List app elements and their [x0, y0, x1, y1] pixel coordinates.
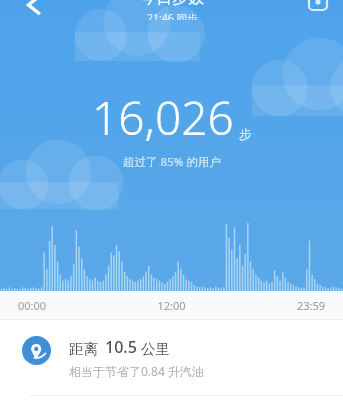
button[interactable]: Back: [14, 0, 54, 19]
staticText: 12:00: [96, 298, 247, 313]
staticText: 10.5: [105, 336, 137, 358]
staticText: 距离: [69, 340, 98, 358]
staticText: 步: [239, 126, 252, 142]
staticText: 23:59: [247, 298, 325, 313]
staticText: 21:46 同步: [147, 11, 198, 20]
staticText: 相当于节省了0.84 升汽油: [69, 363, 204, 379]
staticText: 16,026: [92, 86, 234, 149]
staticText: 今日步数: [140, 0, 204, 8]
staticText: 公里: [141, 340, 170, 358]
staticText: 00:00: [18, 298, 47, 313]
button[interactable]: Share: [301, 0, 335, 18]
staticText: 超过了 85% 的用户: [123, 154, 221, 170]
button[interactable]: 距离: [0, 320, 343, 395]
